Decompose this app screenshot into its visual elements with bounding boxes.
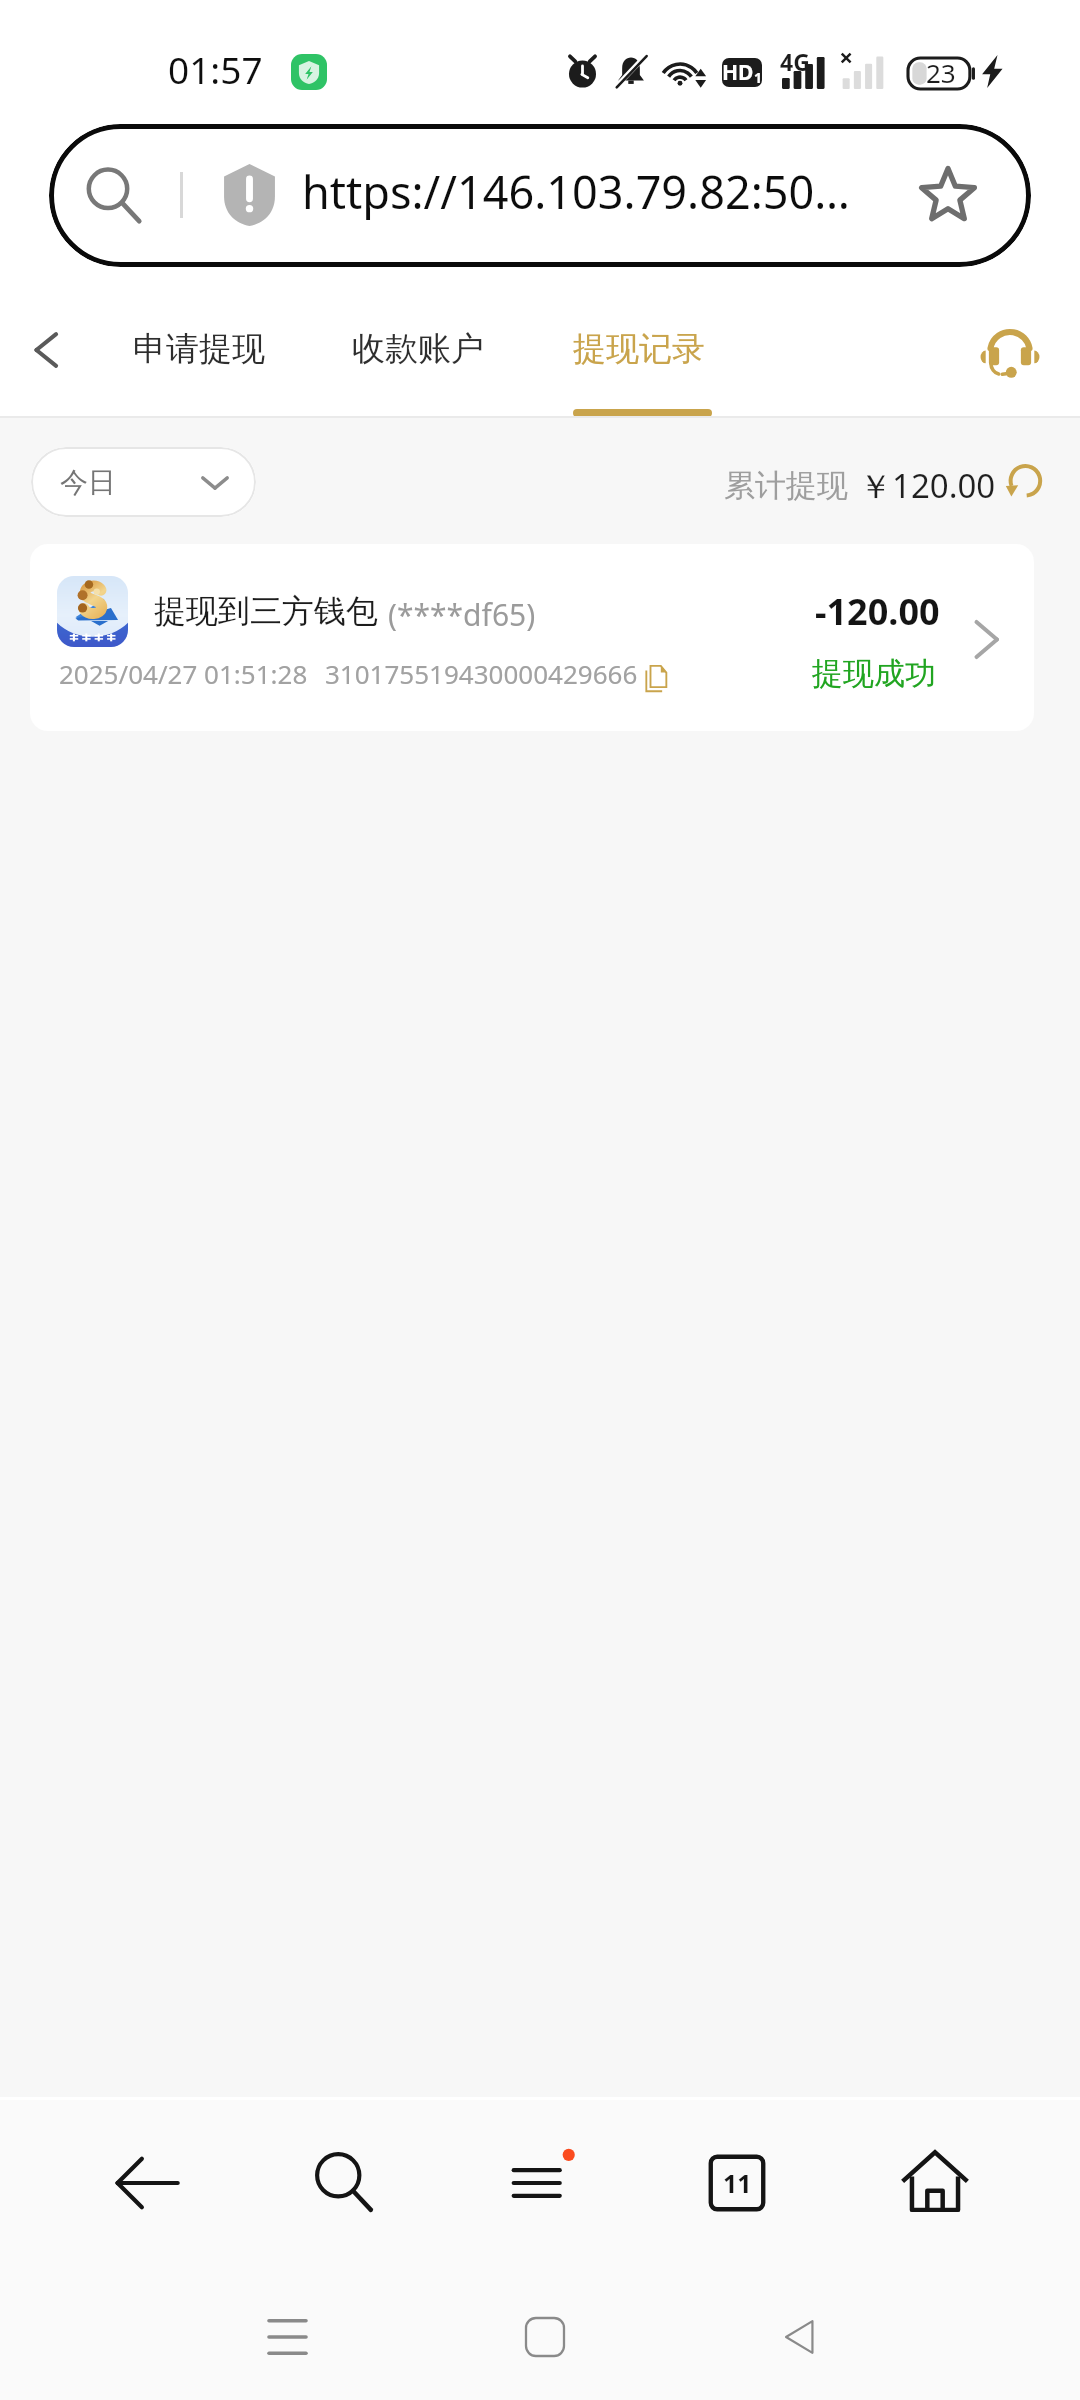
staticText: 提现到三方钱包: [154, 591, 378, 631]
staticText: HD: [722, 58, 754, 87]
button[interactable]: Search: [288, 2123, 400, 2243]
other: Search: [84, 166, 144, 226]
staticText: ￥120.00: [859, 463, 996, 508]
staticText: 23: [926, 55, 956, 90]
staticText: 1: [754, 68, 762, 87]
staticText: 申请提现: [133, 328, 265, 370]
button[interactable]: Home: [497, 2289, 593, 2385]
button[interactable]: Tabs: [681, 2123, 793, 2243]
button[interactable]: 提现到三方钱包: [30, 544, 1034, 731]
staticText: 01:57: [168, 44, 263, 94]
button[interactable]: Refresh: [1003, 460, 1047, 504]
button[interactable]: 今日: [31, 447, 256, 517]
button[interactable]: Customer service: [962, 300, 1058, 410]
staticText: 4G: [780, 46, 810, 77]
button[interactable]: Bookmark: [910, 156, 986, 232]
staticText: 11: [723, 2166, 752, 2200]
staticText: 提现成功: [812, 654, 936, 693]
staticText: 提现记录: [573, 328, 705, 370]
button[interactable]: Recents: [239, 2289, 335, 2385]
button[interactable]: Back: [753, 2289, 849, 2385]
button[interactable]: Menu: [482, 2123, 594, 2243]
staticText: https://146.103.79.82:50…: [302, 161, 850, 222]
button[interactable]: 收款账户: [338, 296, 498, 416]
button[interactable]: [49, 124, 1031, 267]
staticText: 收款账户: [352, 328, 484, 370]
button[interactable]: Copy: [635, 657, 677, 699]
button[interactable]: 提现记录: [559, 296, 719, 416]
button[interactable]: Home: [879, 2123, 991, 2243]
staticText: 今日: [60, 465, 116, 500]
button[interactable]: Back: [91, 2123, 203, 2243]
staticText: (****df65): [388, 594, 536, 635]
staticText: 累计提现: [724, 466, 848, 505]
button[interactable]: Back: [0, 296, 96, 416]
staticText: 310175519430000429666: [325, 656, 638, 691]
staticText: 2025/04/27 01:51:28: [59, 656, 308, 691]
staticText: -120.00: [815, 587, 940, 636]
button[interactable]: 申请提现: [119, 296, 279, 416]
